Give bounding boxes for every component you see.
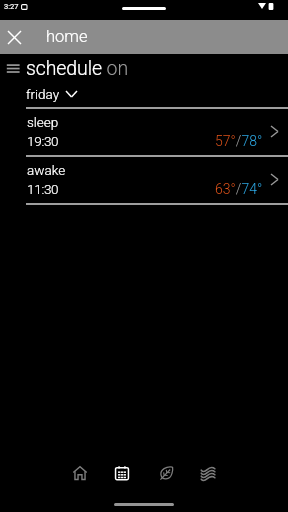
button[interactable]: Menu: [4, 60, 23, 76]
button[interactable]: Eco: [150, 457, 182, 489]
button[interactable]: Home: [64, 457, 96, 489]
staticText: 19:30: [27, 133, 59, 149]
staticText: home: [46, 27, 88, 46]
button[interactable]: awake: [0, 156, 288, 203]
staticText: schedule on: [26, 57, 129, 80]
staticText: friday: [26, 86, 60, 102]
staticText: 57°/78°: [215, 133, 263, 149]
button[interactable]: sleep: [0, 108, 288, 155]
staticText: awake: [27, 162, 66, 178]
button[interactable]: friday: [26, 85, 77, 102]
button[interactable]: Schedule: [106, 457, 138, 489]
staticText: sleep: [27, 114, 59, 130]
staticText: 11:30: [27, 181, 59, 197]
button[interactable]: Air: [192, 457, 224, 489]
staticText: 63°/74°: [215, 181, 263, 197]
button[interactable]: Close: [0, 23, 28, 51]
staticText: 3:27: [4, 2, 19, 11]
